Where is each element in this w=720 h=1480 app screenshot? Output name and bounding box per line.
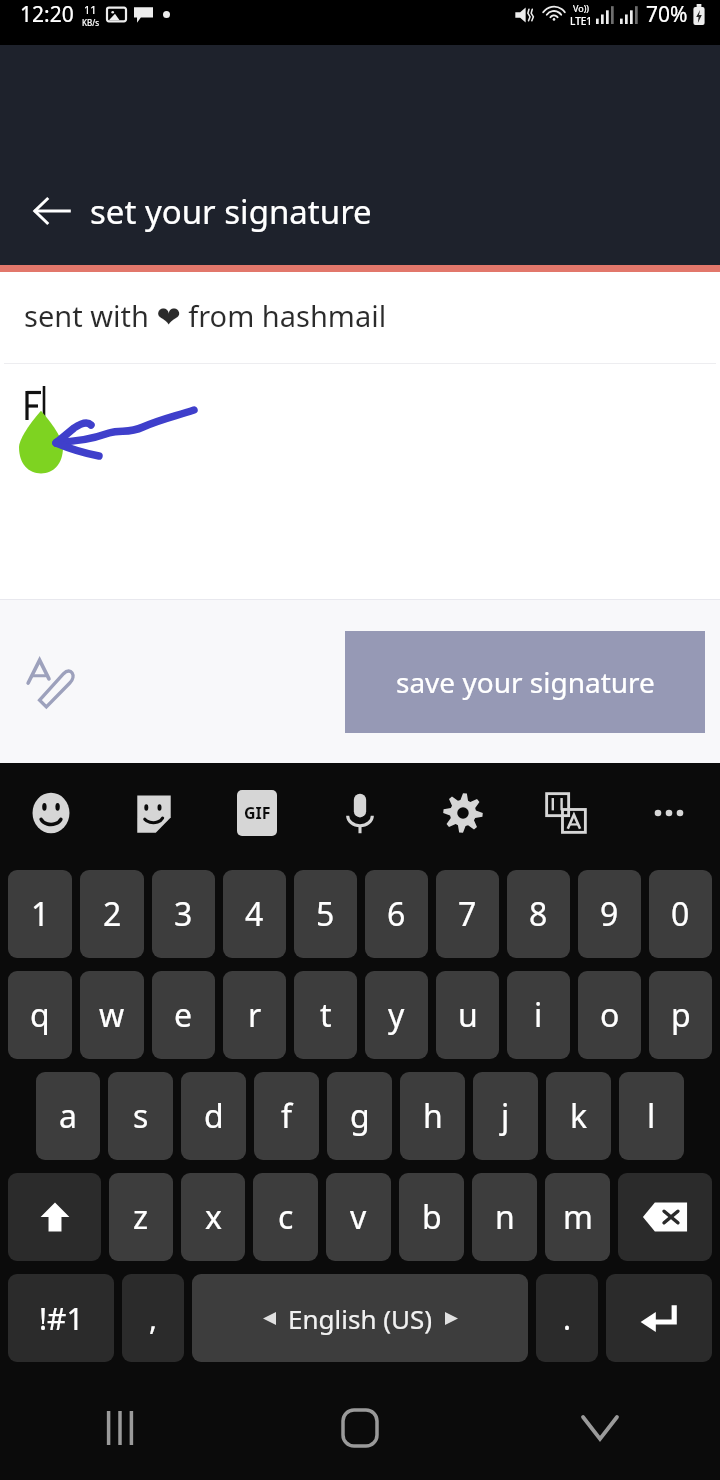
staticText: b bbox=[422, 1195, 442, 1239]
button[interactable]: k bbox=[546, 1072, 611, 1160]
button[interactable]: i bbox=[507, 971, 570, 1059]
button[interactable]: 3 bbox=[152, 870, 215, 958]
staticText: , bbox=[149, 1298, 158, 1339]
staticText: 0 bbox=[671, 892, 690, 936]
button[interactable]: English (US) bbox=[192, 1274, 528, 1362]
button[interactable]: Voice input bbox=[308, 763, 411, 863]
button[interactable]: j bbox=[473, 1072, 538, 1160]
staticText: n bbox=[495, 1195, 515, 1239]
button[interactable]: n bbox=[472, 1173, 537, 1261]
staticText: x bbox=[205, 1195, 222, 1239]
staticText: set your signature bbox=[90, 189, 372, 234]
button[interactable]: g bbox=[327, 1072, 392, 1160]
button[interactable]: e bbox=[152, 971, 215, 1059]
button[interactable]: w bbox=[80, 971, 144, 1059]
button[interactable]: d bbox=[181, 1072, 246, 1160]
button[interactable]: More options bbox=[617, 763, 720, 863]
button[interactable]: 1 bbox=[8, 870, 72, 958]
button[interactable]: r bbox=[223, 971, 286, 1059]
staticText: v bbox=[350, 1195, 367, 1239]
button[interactable]: GIF bbox=[205, 763, 308, 863]
staticText: g bbox=[350, 1094, 370, 1138]
staticText: h bbox=[423, 1094, 443, 1138]
staticText: KB/s bbox=[82, 17, 99, 28]
staticText: e bbox=[174, 993, 193, 1037]
button[interactable]: 8 bbox=[507, 870, 570, 958]
staticText: j bbox=[501, 1094, 510, 1138]
button[interactable]: c bbox=[253, 1173, 318, 1261]
staticText: 1 bbox=[31, 892, 50, 936]
button[interactable]: 0 bbox=[649, 870, 712, 958]
button[interactable]: save your signature bbox=[345, 631, 705, 733]
button[interactable]: . bbox=[536, 1274, 598, 1362]
button[interactable]: Handwriting input bbox=[14, 646, 86, 718]
staticText: 12:20 bbox=[20, 0, 74, 29]
staticText: d bbox=[204, 1094, 224, 1138]
staticText: a bbox=[59, 1094, 77, 1138]
button[interactable]: f bbox=[254, 1072, 319, 1160]
staticText: s bbox=[133, 1094, 149, 1138]
staticText: 4 bbox=[245, 892, 264, 936]
button[interactable]: Emoji bbox=[0, 763, 102, 863]
button[interactable]: y bbox=[365, 971, 428, 1059]
staticText: English (US) bbox=[288, 1301, 433, 1336]
button[interactable]: Shift bbox=[8, 1173, 101, 1261]
button[interactable]: v bbox=[326, 1173, 391, 1261]
staticText: 7 bbox=[458, 892, 477, 936]
staticText: save your signature bbox=[396, 663, 655, 701]
staticText: !#1 bbox=[39, 1298, 84, 1339]
staticText: 70% bbox=[646, 0, 688, 29]
staticText: f bbox=[281, 1094, 293, 1138]
button[interactable]: 4 bbox=[223, 870, 286, 958]
button[interactable]: z bbox=[109, 1173, 173, 1261]
button[interactable]: q bbox=[8, 971, 72, 1059]
staticText: LTE1 bbox=[570, 14, 593, 28]
button[interactable]: 2 bbox=[80, 870, 144, 958]
button[interactable]: 5 bbox=[294, 870, 357, 958]
button[interactable]: p bbox=[649, 971, 712, 1059]
button[interactable]: 6 bbox=[365, 870, 428, 958]
button[interactable]: Home bbox=[240, 1376, 480, 1480]
staticText: q bbox=[30, 993, 50, 1037]
staticText: 6 bbox=[387, 892, 406, 936]
staticText: 5 bbox=[316, 892, 335, 936]
button[interactable]: , bbox=[122, 1274, 184, 1362]
button[interactable]: h bbox=[400, 1072, 465, 1160]
button[interactable]: !#1 bbox=[8, 1274, 114, 1362]
button[interactable]: Hide keyboard bbox=[480, 1376, 720, 1480]
button[interactable]: Recent apps bbox=[0, 1376, 240, 1480]
button[interactable]: u bbox=[436, 971, 499, 1059]
staticText: 8 bbox=[529, 892, 548, 936]
button[interactable]: 9 bbox=[578, 870, 641, 958]
staticText: sent with ❤️ from hashmail bbox=[24, 296, 387, 335]
button[interactable]: s bbox=[108, 1072, 173, 1160]
button[interactable]: b bbox=[399, 1173, 464, 1261]
staticText: p bbox=[671, 993, 691, 1037]
staticText: Vo)) bbox=[573, 2, 590, 14]
staticText: . bbox=[563, 1298, 572, 1339]
staticText: u bbox=[458, 993, 478, 1037]
button[interactable]: l bbox=[619, 1072, 684, 1160]
staticText: c bbox=[278, 1195, 294, 1239]
button[interactable]: Enter bbox=[606, 1274, 712, 1362]
button[interactable]: t bbox=[294, 971, 357, 1059]
button[interactable]: Translate bbox=[514, 763, 617, 863]
staticText: t bbox=[320, 993, 332, 1037]
staticText: 2 bbox=[103, 892, 122, 936]
staticText: y bbox=[388, 993, 405, 1037]
button[interactable]: x bbox=[181, 1173, 245, 1261]
button[interactable]: Back bbox=[24, 183, 80, 239]
button[interactable]: Keyboard settings bbox=[411, 763, 514, 863]
staticText: r bbox=[248, 993, 262, 1037]
staticText: w bbox=[99, 993, 125, 1037]
staticText: 9 bbox=[600, 892, 619, 936]
button[interactable]: a bbox=[36, 1072, 100, 1160]
staticText: 11 bbox=[84, 2, 97, 17]
button[interactable]: 7 bbox=[436, 870, 499, 958]
button[interactable]: m bbox=[545, 1173, 610, 1261]
button[interactable]: Backspace bbox=[618, 1173, 712, 1261]
staticText: l bbox=[647, 1094, 656, 1138]
staticText: m bbox=[563, 1195, 593, 1239]
button[interactable]: Stickers bbox=[102, 763, 205, 863]
button[interactable]: o bbox=[578, 971, 641, 1059]
